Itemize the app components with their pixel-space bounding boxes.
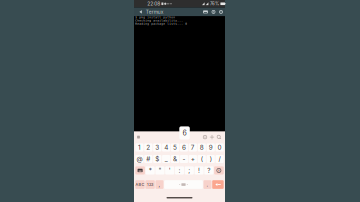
staticText: Termux (146, 9, 164, 15)
button[interactable]: 0 (215, 143, 224, 151)
button[interactable]: 9 (207, 143, 215, 151)
staticText: ' (169, 167, 171, 174)
staticText: , (158, 181, 160, 188)
staticText: 2 (146, 144, 150, 151)
button[interactable]: Search (216, 134, 222, 141)
button[interactable]: 6 (180, 143, 188, 151)
button[interactable]: Space (164, 180, 203, 189)
button[interactable]: Switch keyboard (135, 166, 145, 174)
staticText: $ (155, 155, 159, 163)
button[interactable]: $ (153, 155, 161, 163)
button[interactable]: More options (218, 7, 224, 16)
button[interactable]: Settings (202, 134, 208, 141)
button[interactable]: . (203, 180, 211, 189)
button[interactable]: 8 (198, 143, 206, 151)
button[interactable]: 6 (179, 126, 190, 139)
button[interactable]: 1 (135, 143, 143, 151)
button[interactable]: Sessions (210, 7, 216, 16)
staticText: 5 (173, 144, 177, 151)
staticText: 76% (210, 1, 219, 6)
button[interactable]: : (175, 166, 184, 174)
button[interactable]: _ (162, 155, 170, 163)
button[interactable]: Backspace (214, 166, 224, 174)
staticText: & (173, 155, 177, 163)
staticText: # (146, 155, 150, 163)
staticText: ; (188, 167, 190, 174)
button[interactable]: - (180, 155, 188, 163)
button[interactable]: Back (137, 7, 144, 16)
button[interactable]: ) (207, 155, 215, 163)
button[interactable]: # (144, 155, 152, 163)
staticText: - (182, 155, 185, 163)
staticText: 3 (155, 144, 159, 151)
staticText: + (191, 155, 195, 163)
staticText: _ (165, 155, 168, 163)
button[interactable]: ' (165, 166, 174, 174)
button[interactable]: 123 (145, 180, 155, 189)
staticText: @ (136, 155, 142, 163)
staticText: 22:08 (147, 1, 160, 7)
staticText: 6 (182, 144, 186, 151)
staticText: ) (210, 155, 212, 163)
staticText: 1 (138, 144, 141, 151)
staticText: 0 (218, 144, 222, 151)
staticText: ! (198, 167, 200, 174)
staticText: 4 (164, 144, 168, 151)
staticText: Reading package lists... 0 (135, 22, 187, 25)
staticText: $ pkg install python (135, 16, 175, 19)
staticText: * (149, 167, 152, 174)
button[interactable]: Return (212, 180, 224, 189)
staticText: 9 (209, 144, 213, 151)
staticText: 123 (147, 182, 153, 187)
button[interactable]: 4 (162, 143, 170, 151)
button[interactable]: & (171, 155, 179, 163)
staticText: . (206, 181, 208, 188)
button[interactable]: 5 (171, 143, 179, 151)
button[interactable]: 3 (153, 143, 161, 151)
button[interactable]: * (146, 166, 155, 174)
button[interactable]: " (155, 166, 164, 174)
button[interactable]: Toggle keyboard (202, 7, 209, 16)
button[interactable]: + (189, 155, 197, 163)
button[interactable]: 2 (144, 143, 152, 151)
button[interactable]: Clipboard (135, 134, 142, 141)
staticText: ? (207, 167, 210, 174)
staticText: Checking availability... (135, 19, 183, 22)
staticText: : (178, 167, 180, 174)
staticText: 6 (183, 129, 187, 137)
button[interactable]: @ (135, 155, 143, 163)
staticText: 8 (200, 144, 204, 151)
button[interactable]: Stickers (209, 134, 215, 141)
staticText: " (158, 167, 161, 174)
staticText: / (219, 155, 221, 163)
button[interactable]: ? (204, 166, 213, 174)
button[interactable]: , (155, 180, 163, 189)
button[interactable]: / (215, 155, 224, 163)
staticText: 7 (191, 144, 195, 151)
staticText: x (218, 168, 220, 172)
button[interactable]: ( (198, 155, 206, 163)
staticText: ( (201, 155, 203, 163)
button[interactable]: ABC (135, 180, 145, 189)
button[interactable]: 7 (189, 143, 197, 151)
staticText: ABC (135, 182, 144, 187)
button[interactable]: ! (194, 166, 204, 174)
button[interactable]: ; (185, 166, 194, 174)
